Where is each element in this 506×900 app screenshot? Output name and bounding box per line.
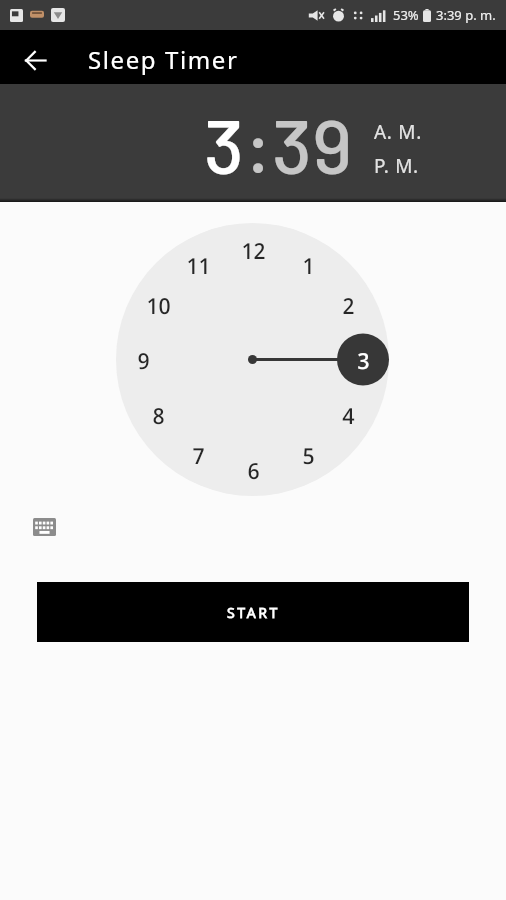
button[interactable]: 3 xyxy=(346,343,380,377)
staticText: 8 xyxy=(152,400,165,430)
staticText: 12 xyxy=(241,235,266,265)
button[interactable]: 4 xyxy=(331,398,365,432)
button[interactable]: 39 xyxy=(272,98,353,189)
button[interactable]: 5 xyxy=(291,438,325,472)
staticText: 3:39 p. m. xyxy=(436,6,496,24)
button[interactable]: A. M. xyxy=(374,119,422,145)
staticText: 3 xyxy=(357,345,370,375)
button[interactable]: 1 xyxy=(291,248,325,282)
button[interactable]: 12 xyxy=(236,233,270,267)
staticText: 1 xyxy=(302,250,315,280)
staticText: START xyxy=(227,603,280,622)
staticText: 4 xyxy=(342,400,355,430)
staticText: 7 xyxy=(192,440,205,470)
staticText: 5 xyxy=(302,440,315,470)
staticText: : xyxy=(245,98,272,189)
button[interactable]: 3 xyxy=(204,98,245,189)
button[interactable]: 8 xyxy=(141,398,175,432)
button[interactable]: 10 xyxy=(141,288,175,322)
staticText: 6 xyxy=(247,455,260,485)
button[interactable]: Switch to text input xyxy=(24,507,64,547)
staticText: 10 xyxy=(146,290,171,320)
staticText: 53% xyxy=(393,6,419,24)
staticText: 9 xyxy=(137,345,150,375)
button[interactable]: Back xyxy=(11,36,59,84)
button[interactable]: START xyxy=(37,582,469,642)
button[interactable]: P. M. xyxy=(374,153,419,179)
staticText: 11 xyxy=(186,250,211,280)
staticText: 2 xyxy=(342,290,355,320)
button[interactable]: 9 xyxy=(126,343,160,377)
button[interactable]: 6 xyxy=(236,453,270,487)
button[interactable]: 7 xyxy=(181,438,215,472)
button[interactable]: 11 xyxy=(181,248,215,282)
staticText: Sleep Timer xyxy=(88,43,239,76)
button[interactable]: 2 xyxy=(331,288,365,322)
